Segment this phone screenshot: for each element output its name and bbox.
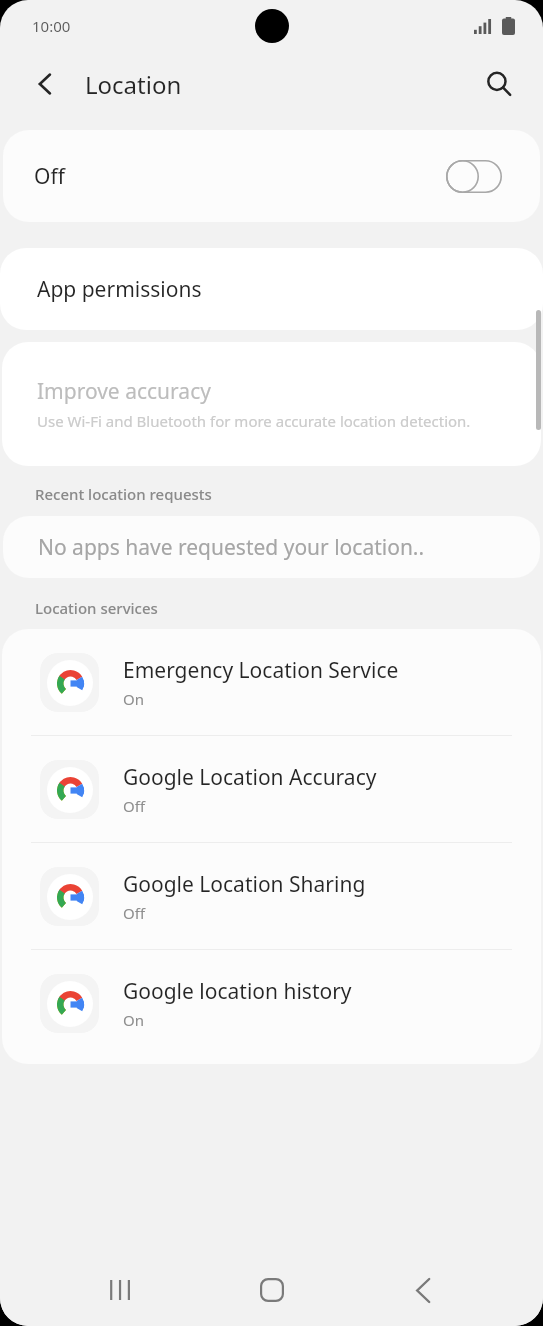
button[interactable]: Google Location Sharing bbox=[2, 843, 541, 949]
staticText: Use Wi-Fi and Bluetooth for more accurat… bbox=[37, 411, 471, 431]
staticText: No apps have requested your location.. bbox=[38, 533, 425, 562]
staticText: Emergency Location Service bbox=[123, 656, 399, 685]
staticText: Off bbox=[34, 162, 65, 191]
staticText: Off bbox=[123, 796, 146, 816]
button[interactable]: Search bbox=[475, 60, 523, 108]
button[interactable]: App permissions bbox=[0, 248, 543, 330]
button[interactable]: Google Location Accuracy bbox=[2, 736, 541, 842]
staticText: Google location history bbox=[123, 977, 352, 1006]
button[interactable]: Google location history bbox=[2, 950, 541, 1056]
button[interactable]: Off bbox=[3, 130, 540, 222]
staticText: Improve accuracy bbox=[37, 377, 211, 406]
button[interactable]: Improve accuracy bbox=[2, 342, 541, 466]
staticText: Google Location Sharing bbox=[123, 870, 366, 899]
staticText: On bbox=[123, 689, 144, 709]
button[interactable]: Home bbox=[240, 1258, 304, 1322]
staticText: Location bbox=[85, 68, 182, 101]
staticText: Google Location Accuracy bbox=[123, 763, 377, 792]
staticText: Location services bbox=[35, 598, 158, 618]
button[interactable]: Back bbox=[22, 60, 70, 108]
staticText: 10:00 bbox=[32, 16, 71, 36]
button[interactable]: Back bbox=[391, 1258, 455, 1322]
staticText: App permissions bbox=[37, 275, 202, 304]
button[interactable]: Emergency Location Service bbox=[2, 629, 541, 735]
staticText: Off bbox=[123, 903, 146, 923]
button[interactable]: Recents bbox=[88, 1258, 152, 1322]
staticText: On bbox=[123, 1010, 144, 1030]
staticText: Recent location requests bbox=[35, 484, 212, 504]
